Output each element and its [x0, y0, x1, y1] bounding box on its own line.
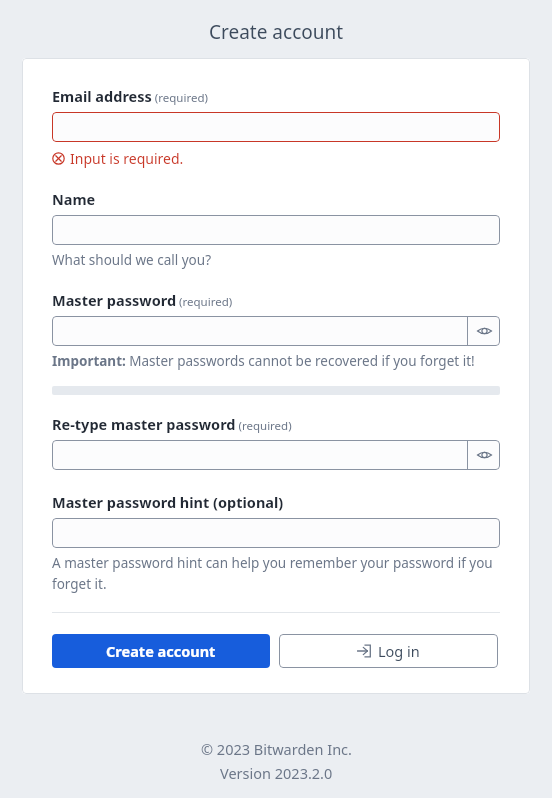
staticText: Input is required.	[70, 149, 184, 168]
staticText: © 2023 Bitwarden Inc.	[201, 739, 352, 759]
button[interactable]: Log in	[279, 634, 498, 668]
staticText: Re-type master password (required)	[52, 414, 292, 434]
staticText: A master password hint can help you reme…	[52, 554, 500, 593]
staticText: Email address (required)	[52, 86, 208, 106]
staticText: What should we call you?	[52, 251, 211, 269]
staticText: Master password (required)	[52, 290, 233, 310]
staticText: Master password hint (optional)	[52, 492, 284, 512]
button[interactable]	[52, 440, 467, 470]
staticText: Create account	[209, 19, 344, 45]
staticText: Name	[52, 189, 96, 209]
staticText: Log in	[378, 641, 420, 661]
button[interactable]: Create account	[52, 634, 270, 668]
button[interactable]	[52, 316, 467, 346]
staticText: Important: Master passwords cannot be re…	[52, 352, 475, 370]
button[interactable]	[52, 112, 500, 142]
staticText: Version 2023.2.0	[220, 763, 333, 783]
button[interactable]	[52, 518, 500, 548]
staticText: Create account	[106, 641, 216, 661]
button[interactable]	[52, 215, 500, 245]
button[interactable]: Toggle visibility	[468, 440, 500, 470]
button[interactable]: Toggle visibility	[468, 316, 500, 346]
